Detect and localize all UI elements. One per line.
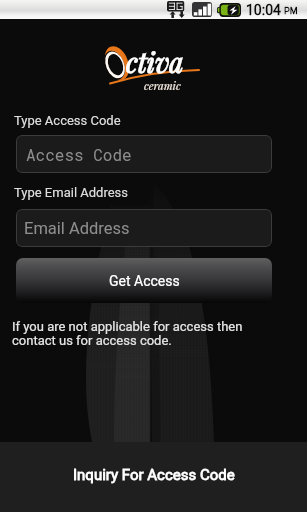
staticText: Access Code — [26, 144, 132, 165]
button[interactable]: Email Address — [16, 209, 272, 247]
staticText: Inquiry For Access Code — [73, 466, 235, 484]
staticText: PM — [284, 6, 298, 17]
staticText: ctiva — [126, 44, 184, 80]
other: 3G network — [167, 1, 188, 18]
staticText: Email Address — [24, 219, 130, 238]
staticText: If you are not applicable for access the… — [12, 319, 243, 349]
staticText: Type Access Code — [14, 113, 121, 128]
staticText: Type Email Address — [14, 185, 129, 200]
staticText: 10:04 — [246, 2, 281, 18]
button[interactable]: Inquiry For Access Code — [0, 442, 307, 512]
staticText: Get Access — [109, 273, 180, 289]
other: Battery charging — [217, 3, 241, 17]
button[interactable]: Get Access — [16, 258, 272, 303]
button[interactable]: Access Code — [16, 135, 272, 173]
other: Signal strength — [192, 2, 212, 17]
staticText: ceramic — [144, 78, 181, 93]
